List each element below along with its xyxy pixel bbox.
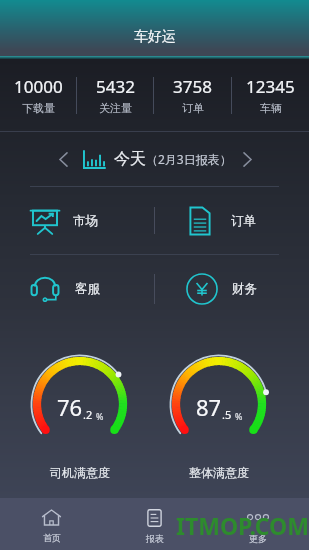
staticText: 整体满意度 xyxy=(189,465,249,480)
button[interactable]: 76 xyxy=(24,352,136,480)
staticText: 市场 xyxy=(73,213,98,229)
button[interactable]: 上一天 xyxy=(50,146,76,172)
staticText: 12345 xyxy=(246,75,295,98)
staticText: 87 xyxy=(196,392,222,422)
staticText: ITMOP.COM xyxy=(176,510,309,541)
staticText: 司机满意度 xyxy=(50,465,110,480)
staticText: 客服 xyxy=(75,281,100,297)
button[interactable]: 10000 xyxy=(0,59,76,131)
staticText: 车好运 xyxy=(134,28,176,46)
staticText: 10000 xyxy=(14,75,63,98)
button[interactable]: 更多 xyxy=(206,498,309,550)
staticText: 今天 xyxy=(114,149,146,169)
staticText: 订单 xyxy=(231,213,256,229)
staticText: % xyxy=(96,410,104,422)
staticText: 3758 xyxy=(173,75,212,98)
staticText: 车辆 xyxy=(260,101,282,115)
staticText: 关注量 xyxy=(99,101,132,115)
button[interactable]: 5432 xyxy=(77,59,153,131)
button[interactable]: 首页 xyxy=(0,498,103,550)
button[interactable]: 市场 xyxy=(0,187,154,254)
button[interactable]: 12345 xyxy=(232,59,309,131)
staticText: 报表 xyxy=(146,533,164,544)
staticText: 财务 xyxy=(232,281,257,297)
staticText: （2月3日报表） xyxy=(146,151,232,167)
staticText: .5 xyxy=(222,407,232,422)
button[interactable]: 订单 xyxy=(155,187,309,254)
button[interactable]: 下一天 xyxy=(234,146,260,172)
staticText: 5432 xyxy=(96,75,135,98)
staticText: 下载量 xyxy=(22,101,55,115)
staticText: 首页 xyxy=(43,532,61,543)
staticText: 76 xyxy=(57,392,83,422)
button[interactable]: 87 xyxy=(163,352,275,480)
staticText: 更多 xyxy=(249,533,267,544)
button[interactable]: 财务 xyxy=(155,255,309,322)
staticText: 订单 xyxy=(182,101,204,115)
staticText: % xyxy=(235,410,243,422)
staticText: .2 xyxy=(83,407,93,422)
button[interactable]: 客服 xyxy=(0,255,154,322)
button[interactable]: 3758 xyxy=(154,59,231,131)
button[interactable]: 报表 xyxy=(103,498,206,550)
